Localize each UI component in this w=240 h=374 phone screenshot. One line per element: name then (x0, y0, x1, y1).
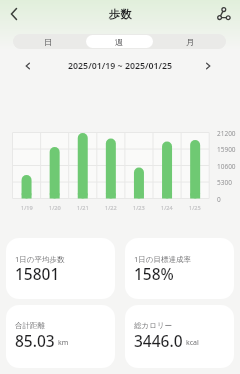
staticText: 総カロリー (134, 321, 173, 330)
staticText: 3446.0 (134, 330, 183, 351)
staticText: 合計距離 (15, 321, 45, 330)
staticText: 1日の平均歩数 (15, 254, 65, 264)
button[interactable] (6, 6, 22, 22)
button[interactable]: 1日の平均歩数 (6, 238, 115, 299)
staticText: 15801 (15, 263, 60, 284)
button[interactable]: 日 (13, 34, 84, 49)
button[interactable]: 月 (155, 34, 226, 49)
staticText: 1/24 (161, 204, 173, 212)
button[interactable]: 週 (86, 35, 153, 48)
staticText: 21200 (217, 129, 236, 138)
staticText: 1/21 (77, 204, 89, 212)
staticText: 0 (217, 195, 221, 204)
staticText: kcal (186, 338, 199, 348)
button[interactable]: 合計距離 (6, 305, 115, 368)
staticText: 週 (115, 37, 124, 47)
staticText: 1/20 (49, 204, 61, 212)
staticText: 2025/01/19 ~ 2025/01/25 (68, 60, 173, 72)
staticText: 歩数 (109, 7, 132, 21)
button[interactable] (24, 62, 32, 70)
staticText: 10600 (217, 162, 236, 171)
button[interactable] (214, 5, 232, 23)
staticText: 月 (186, 37, 195, 47)
staticText: 158% (134, 263, 174, 284)
staticText: 1日の目標達成率 (134, 254, 191, 264)
staticText: km (58, 338, 69, 348)
button[interactable]: 1日の目標達成率 (125, 238, 234, 299)
staticText: 1/22 (105, 204, 117, 212)
staticText: 1/23 (133, 204, 145, 212)
staticText: 日 (44, 37, 53, 47)
staticText: 15900 (217, 145, 236, 154)
staticText: 85.03 (15, 330, 55, 351)
button[interactable] (204, 62, 212, 70)
staticText: 1/25 (189, 204, 201, 212)
button[interactable]: 総カロリー (125, 305, 234, 368)
staticText: 5300 (217, 178, 232, 187)
staticText: 1/19 (21, 204, 33, 212)
